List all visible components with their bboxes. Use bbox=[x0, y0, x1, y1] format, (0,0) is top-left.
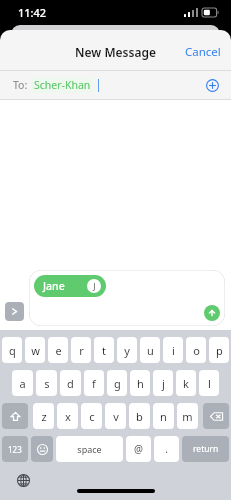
button[interactable]: h bbox=[130, 370, 150, 396]
button[interactable]: i bbox=[163, 337, 183, 363]
button[interactable]: n bbox=[153, 403, 174, 429]
staticText: . bbox=[165, 442, 168, 456]
button[interactable]: p bbox=[209, 337, 229, 363]
staticText: g bbox=[114, 376, 121, 391]
staticText: s bbox=[44, 376, 50, 391]
button[interactable]: . bbox=[154, 436, 179, 462]
button[interactable]: j bbox=[153, 370, 173, 396]
button[interactable]: return bbox=[182, 436, 229, 462]
button[interactable]: o bbox=[186, 337, 206, 363]
button[interactable]: q bbox=[2, 337, 22, 363]
staticText: r bbox=[79, 343, 84, 358]
button[interactable]: To: bbox=[0, 71, 231, 99]
staticText: a bbox=[19, 376, 26, 391]
staticText: l bbox=[208, 376, 211, 391]
staticText: v bbox=[113, 409, 119, 424]
staticText: New Message bbox=[75, 44, 156, 60]
button[interactable]: Jane bbox=[43, 279, 101, 293]
button[interactable]: l bbox=[199, 370, 219, 396]
button[interactable]: a bbox=[12, 370, 33, 396]
staticText: t bbox=[102, 343, 106, 358]
staticText: k bbox=[183, 376, 189, 391]
button[interactable]: f bbox=[84, 370, 104, 396]
button[interactable]: r bbox=[71, 337, 91, 363]
button[interactable]: v bbox=[105, 403, 126, 429]
staticText: p bbox=[216, 343, 223, 358]
button[interactable]: Send bbox=[204, 305, 220, 321]
button[interactable]: Change keyboard language bbox=[14, 471, 32, 489]
staticText: o bbox=[193, 343, 200, 358]
staticText: J bbox=[93, 281, 96, 292]
staticText: y bbox=[124, 343, 130, 358]
staticText: i bbox=[172, 343, 175, 358]
staticText: x bbox=[65, 409, 71, 424]
button[interactable]: Shift bbox=[2, 403, 28, 429]
button[interactable]: m bbox=[177, 403, 198, 429]
button[interactable]: b bbox=[129, 403, 150, 429]
button[interactable]: w bbox=[25, 337, 45, 363]
button[interactable]: space bbox=[56, 436, 123, 462]
staticText: return bbox=[193, 443, 219, 455]
staticText: @ bbox=[134, 442, 143, 456]
staticText: space bbox=[77, 443, 102, 455]
button[interactable]: Cancel bbox=[175, 38, 231, 66]
button[interactable]: z bbox=[33, 403, 54, 429]
staticText: d bbox=[67, 376, 74, 391]
staticText: Scher-Khan bbox=[34, 78, 91, 92]
button[interactable]: x bbox=[57, 403, 78, 429]
button[interactable]: e bbox=[48, 337, 68, 363]
button[interactable]: Backspace bbox=[203, 403, 229, 429]
button[interactable]: Expand apps bbox=[5, 302, 24, 321]
staticText: Jane bbox=[43, 279, 65, 293]
staticText: u bbox=[147, 343, 154, 358]
staticText: m bbox=[182, 409, 193, 424]
staticText: Cancel bbox=[185, 44, 221, 60]
staticText: b bbox=[136, 409, 143, 424]
button[interactable]: k bbox=[176, 370, 196, 396]
button[interactable]: 123 bbox=[2, 436, 28, 462]
staticText: h bbox=[137, 376, 144, 391]
button[interactable]: c bbox=[81, 403, 102, 429]
staticText: z bbox=[41, 409, 47, 424]
staticText: f bbox=[92, 376, 96, 391]
staticText: c bbox=[89, 409, 95, 424]
staticText: n bbox=[160, 409, 167, 424]
button[interactable]: @ bbox=[126, 436, 151, 462]
staticText: q bbox=[9, 343, 16, 358]
button[interactable]: s bbox=[36, 370, 57, 396]
button[interactable]: y bbox=[117, 337, 137, 363]
staticText: 11:42 bbox=[18, 5, 47, 20]
button[interactable]: d bbox=[60, 370, 81, 396]
button[interactable]: g bbox=[107, 370, 127, 396]
staticText: 123 bbox=[8, 444, 22, 455]
staticText: w bbox=[31, 343, 40, 358]
button[interactable]: Add contact bbox=[199, 72, 225, 98]
staticText: To: bbox=[13, 78, 28, 92]
button[interactable]: t bbox=[94, 337, 114, 363]
staticText: e bbox=[55, 343, 62, 358]
button[interactable]: Jane bbox=[29, 270, 225, 326]
staticText: j bbox=[162, 376, 165, 391]
button[interactable]: u bbox=[140, 337, 160, 363]
button[interactable]: Emoji bbox=[31, 436, 53, 462]
